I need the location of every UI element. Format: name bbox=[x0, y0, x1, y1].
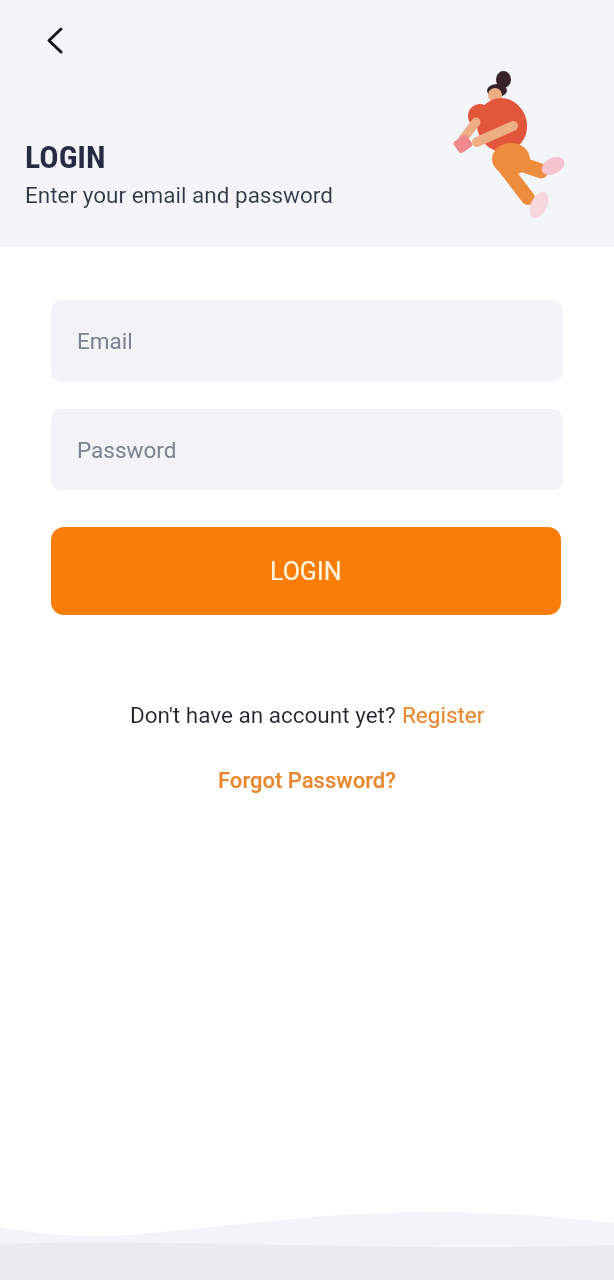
staticText: Enter your email and password bbox=[25, 182, 333, 208]
staticText: Password bbox=[77, 437, 177, 463]
staticText: Don't have an account yet? bbox=[130, 702, 402, 728]
staticText: LOGIN bbox=[270, 557, 342, 586]
staticText: Email bbox=[77, 328, 133, 354]
button[interactable]: Email bbox=[51, 300, 563, 382]
staticText: LOGIN bbox=[25, 138, 106, 176]
button[interactable] bbox=[31, 16, 79, 64]
button[interactable]: Register bbox=[402, 702, 485, 728]
button[interactable]: Forgot Password? bbox=[218, 768, 396, 794]
button[interactable]: LOGIN bbox=[51, 527, 561, 615]
button[interactable]: Password bbox=[51, 409, 563, 490]
